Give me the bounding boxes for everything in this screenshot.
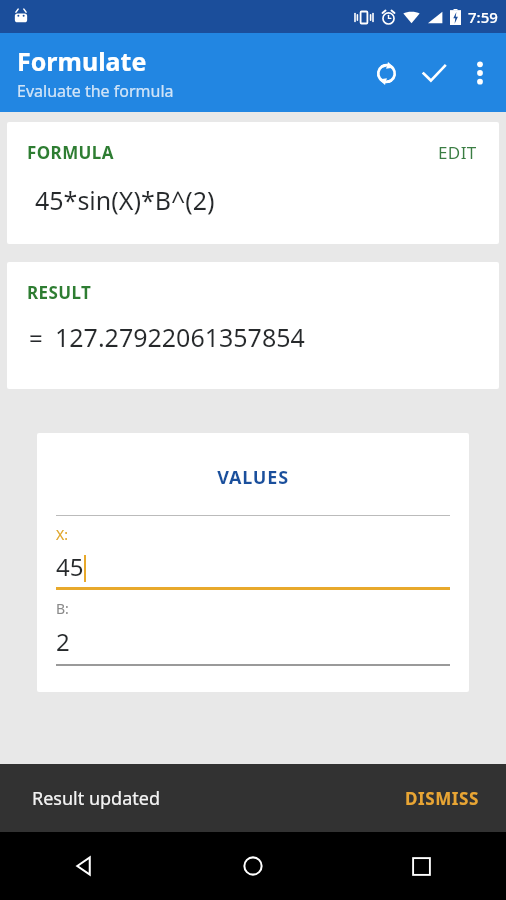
staticText: Formulate [17, 44, 147, 78]
staticText: FORMULA [27, 141, 114, 164]
staticText: Result updated [32, 786, 160, 811]
button[interactable]: Confirm [410, 49, 458, 97]
staticText: 2 [56, 625, 70, 658]
staticText: 45*sin(X)*B^(2) [35, 183, 215, 217]
staticText: = [29, 321, 43, 354]
staticText: DISMISS [405, 787, 480, 810]
staticText: B: [56, 599, 69, 618]
button[interactable]: Recent apps [337, 832, 506, 900]
button[interactable]: Home [168, 832, 337, 900]
staticText: RESULT [27, 281, 92, 304]
staticText: 7:59 [468, 7, 498, 27]
button[interactable]: X: [56, 516, 450, 590]
staticText: 127.27922061357854 [55, 320, 305, 354]
button[interactable]: EDIT [434, 139, 481, 166]
button[interactable]: More options [458, 51, 502, 95]
button[interactable]: Back [0, 832, 168, 900]
staticText: X: [56, 525, 68, 544]
button[interactable]: Refresh [362, 49, 410, 97]
button[interactable]: DISMISS [379, 775, 506, 822]
staticText: Evaluate the formula [17, 80, 174, 102]
staticText: EDIT [438, 141, 477, 164]
button[interactable]: B: [56, 590, 450, 666]
staticText: VALUES [37, 465, 469, 490]
staticText: 45 [56, 550, 84, 583]
